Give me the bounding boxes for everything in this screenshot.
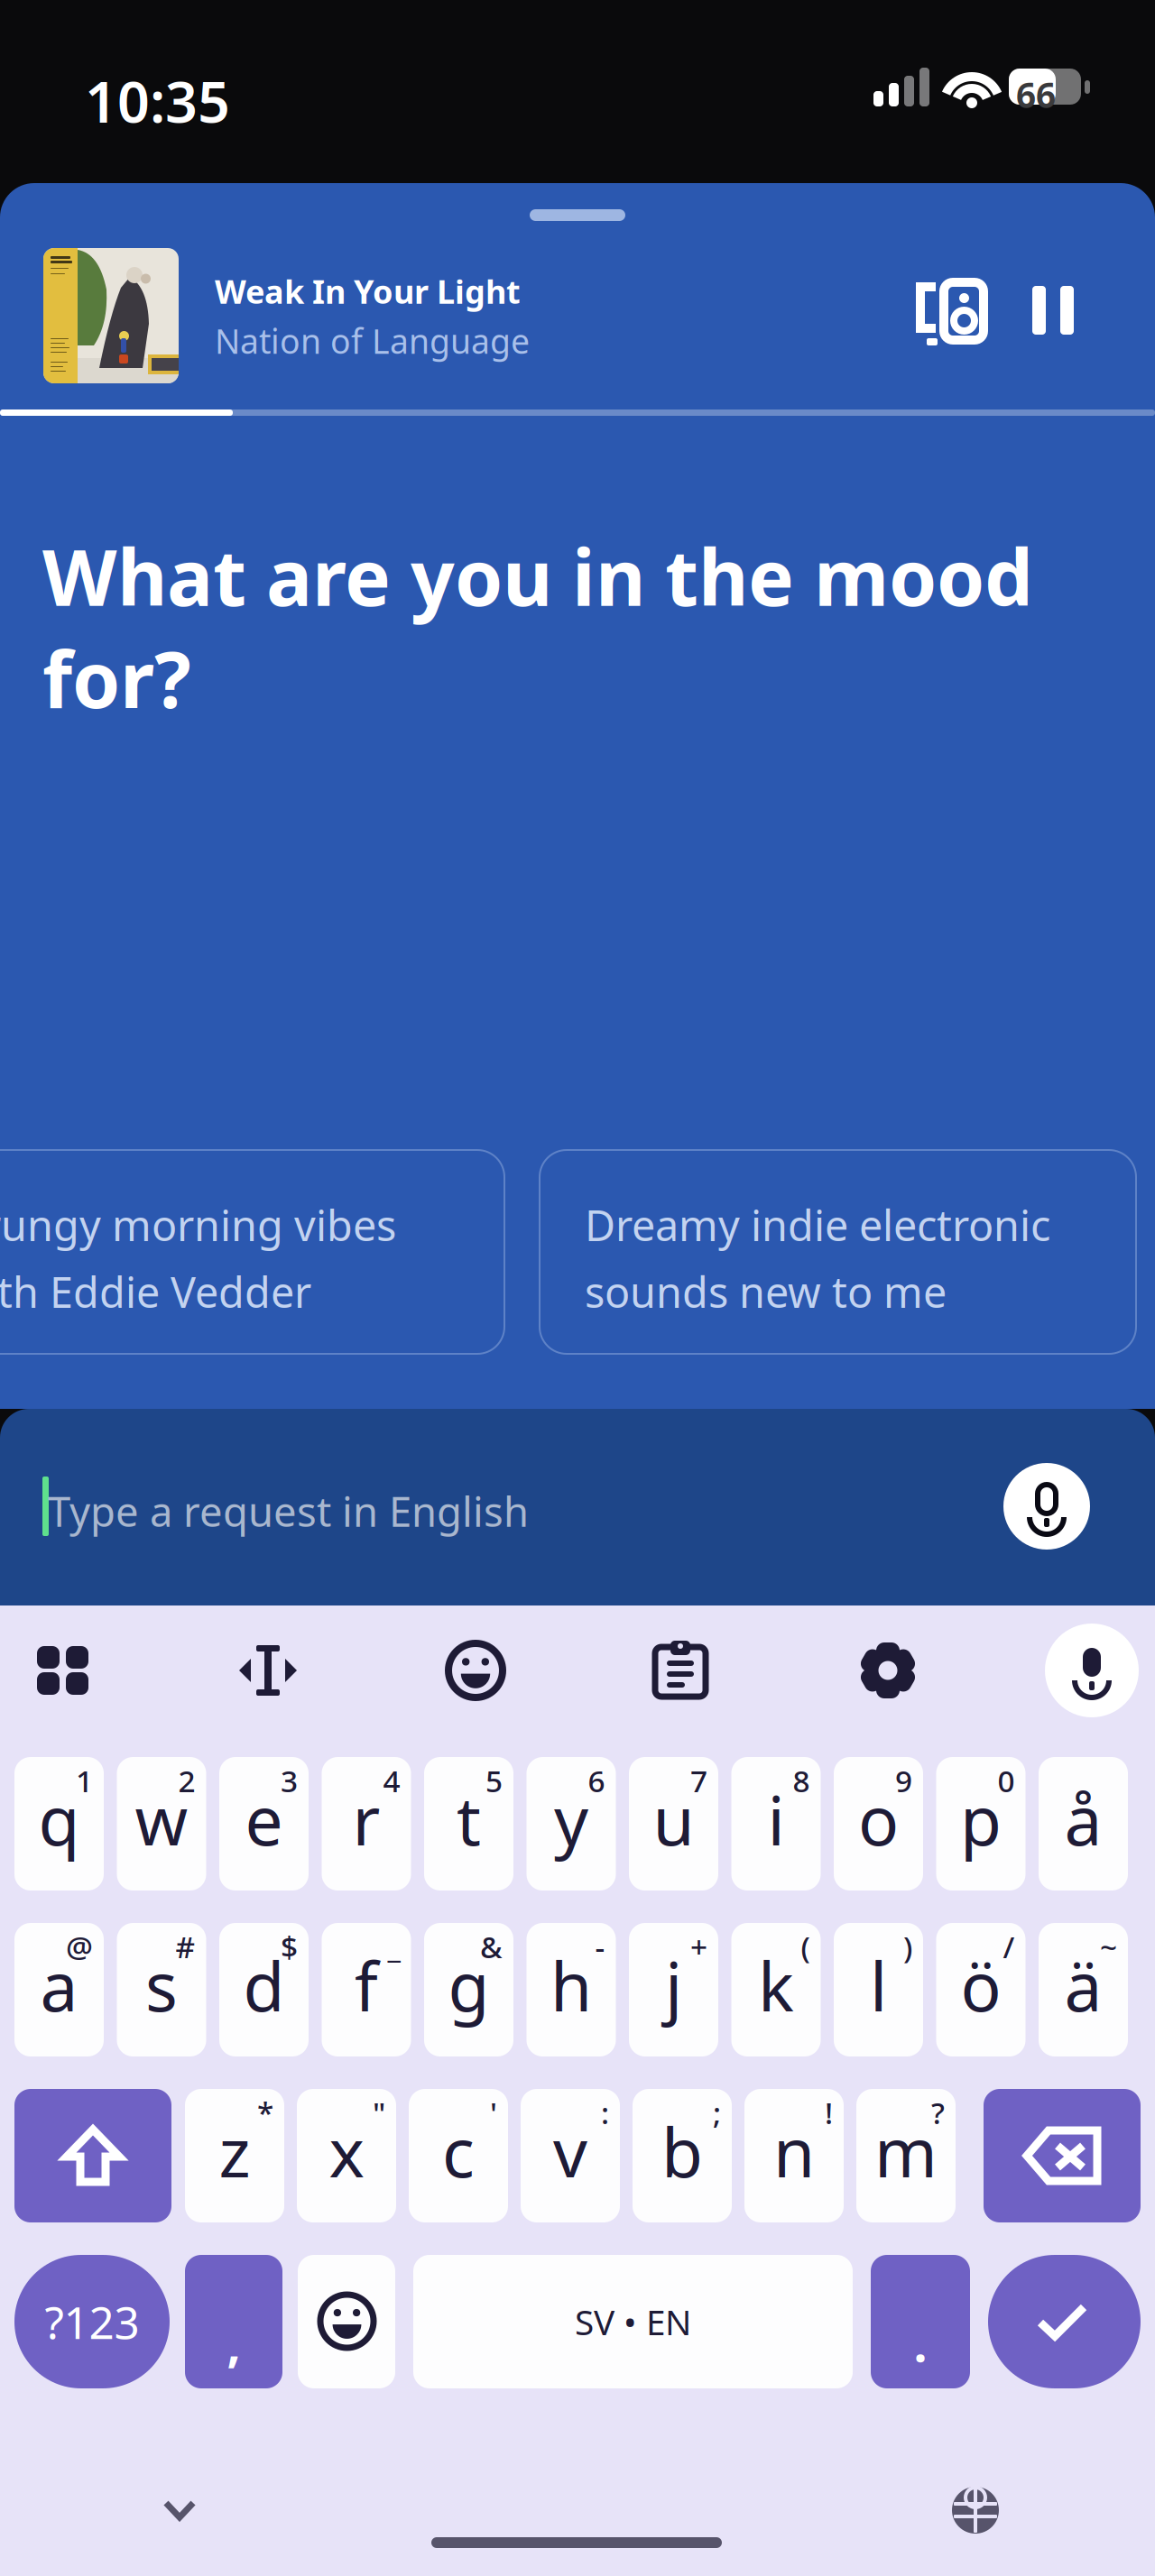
- staticText: with Eddie Vedder: [0, 1264, 311, 1320]
- staticText: &: [480, 1927, 503, 1967]
- staticText: ): [903, 1927, 912, 1967]
- staticText: 9: [895, 1761, 912, 1801]
- staticText: c: [442, 2106, 475, 2196]
- staticText: m: [874, 2106, 938, 2196]
- button[interactable]: x: [297, 2089, 396, 2222]
- button[interactable]: h: [527, 1923, 616, 2056]
- staticText: p: [960, 1775, 1002, 1864]
- button[interactable]: Keyboard modes: [37, 1646, 60, 1669]
- staticText: q: [38, 1775, 80, 1864]
- staticText: 4: [383, 1761, 400, 1801]
- button[interactable]: Pause: [1032, 286, 1083, 340]
- button[interactable]: q: [14, 1757, 104, 1891]
- staticText: !: [825, 2093, 833, 2133]
- staticText: :: [601, 2093, 609, 2133]
- button[interactable]: Shift: [14, 2089, 171, 2222]
- staticText: ": [373, 2093, 385, 2133]
- staticText: SV • EN: [575, 2298, 691, 2345]
- staticText: r: [352, 1775, 380, 1864]
- button[interactable]: Dreamy indie electronic: [540, 1150, 1136, 1354]
- staticText: h: [550, 1940, 592, 2030]
- button[interactable]: Done: [988, 2255, 1141, 2388]
- button[interactable]: a: [14, 1923, 104, 2056]
- button[interactable]: Clipboard: [655, 1641, 706, 1690]
- button[interactable]: j: [629, 1923, 718, 2056]
- staticText: Type a request in English: [48, 1484, 529, 1538]
- button[interactable]: Backspace: [984, 2089, 1141, 2222]
- staticText: ,: [227, 2311, 240, 2375]
- staticText: 8: [793, 1761, 810, 1801]
- button[interactable]: ?123: [14, 2255, 170, 2388]
- staticText: ;: [713, 2093, 721, 2133]
- button[interactable]: Emoji: [298, 2255, 395, 2388]
- staticText: 3: [281, 1761, 298, 1801]
- staticText: $: [281, 1927, 298, 1967]
- staticText: a: [40, 1940, 78, 2030]
- staticText: e: [245, 1775, 283, 1864]
- staticText: 66: [1016, 71, 1056, 118]
- button[interactable]: z: [185, 2089, 284, 2222]
- staticText: Nation of Language: [215, 318, 530, 363]
- staticText: (: [801, 1927, 810, 1967]
- button[interactable]: Grungy morning vibes: [0, 1150, 504, 1354]
- staticText: /: [1003, 1927, 1015, 1967]
- button[interactable]: n: [744, 2089, 844, 2222]
- button[interactable]: e: [219, 1757, 309, 1891]
- button[interactable]: c: [409, 2089, 508, 2222]
- button[interactable]: Move cursor: [239, 1645, 263, 1696]
- staticText: y: [554, 1775, 588, 1864]
- button[interactable]: Period: [871, 2255, 970, 2388]
- staticText: 5: [485, 1761, 503, 1801]
- staticText: _: [388, 1927, 400, 1967]
- staticText: o: [858, 1775, 899, 1864]
- button[interactable]: SV • EN: [413, 2255, 853, 2388]
- button[interactable]: l: [834, 1923, 923, 2056]
- button[interactable]: ö: [936, 1923, 1026, 2056]
- button[interactable]: v: [521, 2089, 620, 2222]
- staticText: ?123: [45, 2292, 139, 2351]
- button[interactable]: y: [527, 1757, 616, 1891]
- staticText: u: [653, 1775, 694, 1864]
- button[interactable]: Comma: [185, 2255, 282, 2388]
- staticText: ~: [1100, 1927, 1117, 1967]
- staticText: 7: [690, 1761, 707, 1801]
- button[interactable]: Change language: [952, 2487, 999, 2534]
- staticText: What are you in the mood for?: [42, 525, 1033, 729]
- button[interactable]: m: [856, 2089, 956, 2222]
- staticText: 2: [178, 1761, 195, 1801]
- staticText: *: [257, 2093, 273, 2133]
- staticText: j: [665, 1940, 682, 2030]
- button[interactable]: r: [322, 1757, 411, 1891]
- button[interactable]: Settings: [860, 1642, 916, 1698]
- button[interactable]: g: [424, 1923, 513, 2056]
- button[interactable]: Voice typing: [1045, 1624, 1139, 1717]
- button[interactable]: t: [424, 1757, 513, 1891]
- button[interactable]: Connect to a device: [911, 282, 987, 345]
- staticText: 10:35: [85, 63, 230, 138]
- button[interactable]: f: [322, 1923, 411, 2056]
- staticText: ': [490, 2093, 497, 2133]
- button[interactable]: d: [219, 1923, 309, 2056]
- staticText: 6: [588, 1761, 605, 1801]
- staticText: g: [448, 1940, 490, 2030]
- button[interactable]: ä: [1039, 1923, 1128, 2056]
- button[interactable]: Voice input: [1003, 1463, 1090, 1550]
- button[interactable]: w: [117, 1757, 206, 1891]
- button[interactable]: k: [731, 1923, 821, 2056]
- button[interactable]: p: [936, 1757, 1026, 1891]
- button[interactable]: s: [117, 1923, 206, 2056]
- button[interactable]: i: [731, 1757, 821, 1891]
- staticText: ä: [1064, 1940, 1102, 2030]
- staticText: 0: [998, 1761, 1015, 1801]
- button[interactable]: b: [633, 2089, 732, 2222]
- staticText: d: [243, 1940, 285, 2030]
- staticText: k: [758, 1940, 794, 2030]
- button[interactable]: Emoji: [448, 1643, 503, 1697]
- button[interactable]: u: [629, 1757, 718, 1891]
- button[interactable]: o: [834, 1757, 923, 1891]
- staticText: b: [661, 2106, 703, 2196]
- button[interactable]: Hide keyboard: [163, 2500, 196, 2522]
- button[interactable]: å: [1039, 1757, 1128, 1891]
- staticText: Dreamy indie electronic: [585, 1197, 1050, 1253]
- staticText: z: [219, 2106, 250, 2196]
